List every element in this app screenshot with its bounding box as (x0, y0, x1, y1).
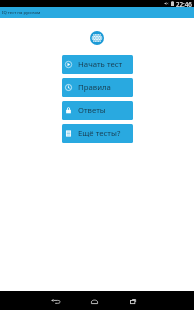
button[interactable]: Ответы (62, 101, 133, 120)
staticText: IQ тест на русском (2, 10, 41, 16)
staticText: Начать тест (78, 59, 123, 70)
button[interactable]: Начать тест (62, 55, 133, 74)
staticText: Ещё тесты? (78, 128, 121, 139)
button[interactable]: Ещё тесты? (62, 124, 133, 143)
button[interactable]: Правила (62, 78, 133, 97)
staticText: Ответы (78, 105, 106, 116)
button[interactable]: Home (91, 293, 130, 310)
button[interactable]: Back (51, 293, 91, 310)
button[interactable]: App logo (90, 31, 104, 45)
staticText: 22:46 (176, 0, 192, 7)
staticText: Правила (78, 82, 111, 93)
button[interactable]: Recents (130, 293, 136, 310)
